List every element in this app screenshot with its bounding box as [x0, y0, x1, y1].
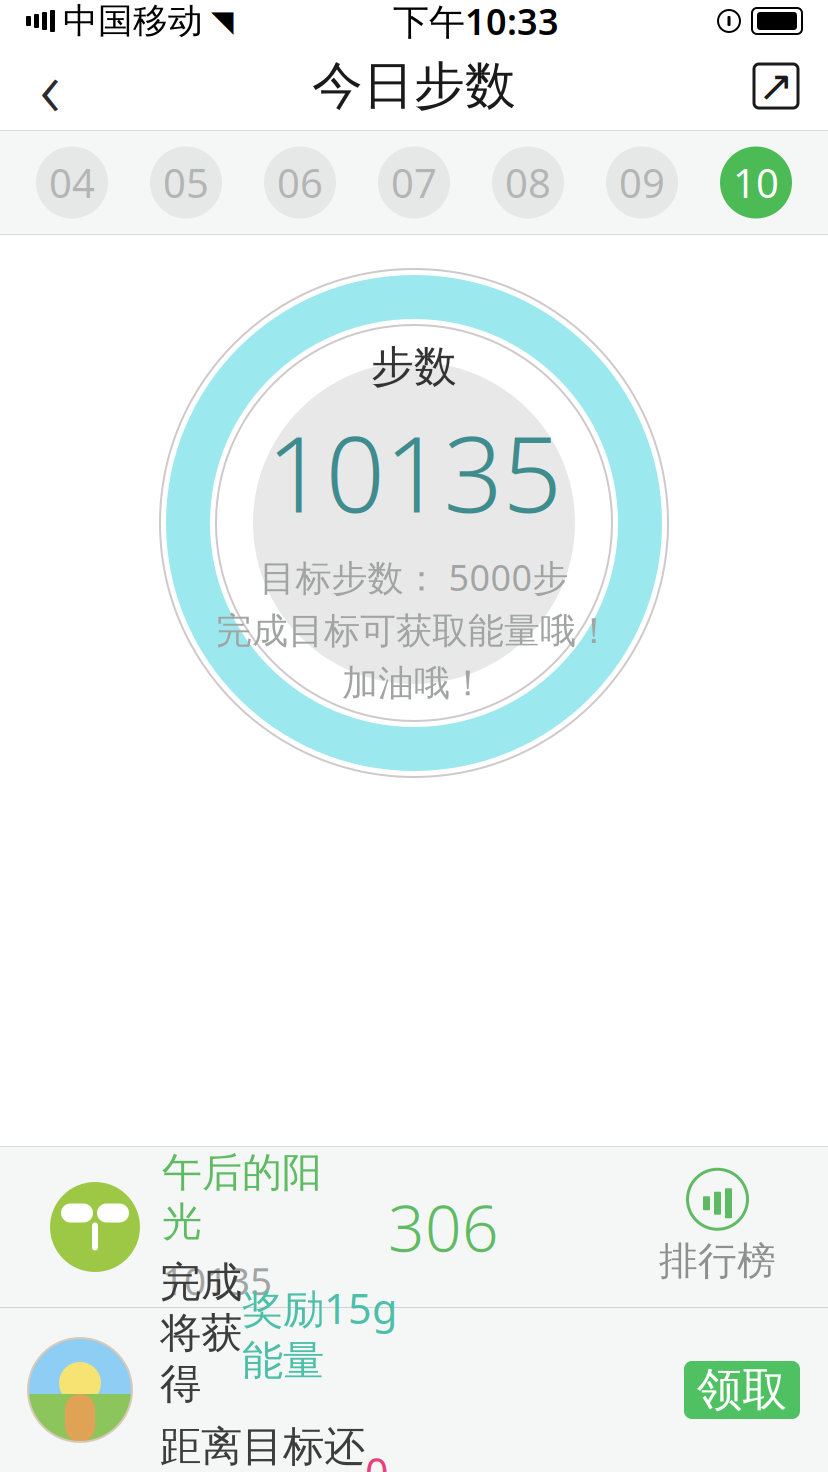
staticText: 0 [365, 1445, 389, 1472]
staticText: 10135 [162, 1254, 272, 1306]
button[interactable]: 09 [585, 131, 699, 234]
staticText: 中国移动 [63, 0, 203, 42]
staticText: 306 [388, 1184, 499, 1269]
staticText: 完成目标可获取能量哦！ [216, 609, 612, 653]
staticText: 下午10:33 [393, 0, 559, 45]
staticText: 步数 [371, 341, 457, 393]
button[interactable]: 08 [471, 131, 585, 234]
button[interactable]: 分享 [724, 42, 828, 130]
staticText: 10135 [266, 403, 561, 541]
staticText: 午后的阳光 [162, 1148, 322, 1246]
button[interactable]: 返回 [0, 42, 100, 130]
staticText: 06 [277, 156, 323, 209]
staticText: 07 [391, 156, 437, 209]
staticText: 05 [163, 156, 209, 209]
button[interactable]: 05 [129, 131, 243, 234]
button[interactable]: 10 [699, 131, 813, 234]
staticText: 04 [49, 156, 95, 209]
staticText: ‹ [39, 33, 60, 139]
staticText: 今日步数 [312, 55, 516, 117]
staticText: 目标步数： 5000步 [259, 553, 568, 601]
staticText: 08 [505, 156, 551, 209]
button[interactable]: 06 [243, 131, 357, 234]
button[interactable]: 午后的阳光 [0, 1147, 828, 1307]
staticText: 完成将获得 [160, 1257, 242, 1409]
staticText: 排行榜 [659, 1237, 776, 1285]
staticText: 距离目标还有 [160, 1421, 365, 1472]
button[interactable]: 领取 [684, 1361, 800, 1419]
staticText: 09 [619, 156, 665, 209]
button[interactable]: 07 [357, 131, 471, 234]
button[interactable]: 04 [15, 131, 129, 234]
staticText: ◥ [211, 4, 234, 38]
staticText: 10 [733, 156, 779, 209]
staticText: 加油哦！ [342, 661, 486, 705]
staticText: ↗ [758, 62, 794, 110]
staticText: 奖励15g能量 [242, 1280, 397, 1386]
staticText: 领取 [697, 1362, 787, 1418]
